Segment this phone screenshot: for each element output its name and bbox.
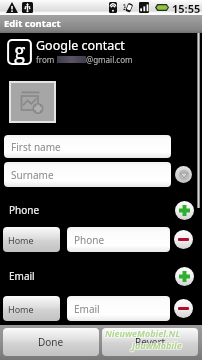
staticText: JouwMobile: [131, 338, 181, 350]
staticText: Email: [74, 302, 100, 316]
button[interactable]: Remove: [174, 299, 193, 318]
button[interactable]: Phone: [67, 227, 170, 252]
staticText: Phone: [9, 203, 40, 217]
staticText: NieuweMobiel.NL: [105, 326, 181, 338]
button[interactable]: Add photo: [11, 83, 54, 121]
staticText: from: [36, 54, 57, 65]
staticText: NieuweMobiel.NL: [104, 326, 180, 338]
button[interactable]: Remove: [174, 230, 193, 249]
staticText: NieuweMobiel.NL: [105, 328, 181, 340]
button[interactable]: Add: [175, 201, 194, 220]
staticText: JouwMobile: [133, 338, 183, 350]
staticText: Home: [8, 303, 34, 315]
staticText: NieuweMobiel.NL: [104, 328, 180, 340]
staticText: Email: [9, 269, 35, 283]
staticText: Google contact: [36, 37, 125, 54]
staticText: NieuweMobiel.NL: [106, 328, 182, 340]
button[interactable]: Home: [3, 296, 60, 321]
button[interactable]: Email: [67, 296, 170, 321]
staticText: NieuweMobiel.NL: [106, 326, 182, 338]
staticText: JouwMobile: [133, 340, 183, 352]
staticText: Surname: [11, 168, 54, 182]
staticText: JouwMobile: [133, 339, 183, 351]
button[interactable]: Revert: [102, 328, 198, 356]
staticText: JouwMobile: [132, 340, 182, 352]
staticText: Phone: [74, 233, 105, 247]
staticText: Edit contact: [4, 17, 61, 30]
staticText: Home: [8, 234, 34, 246]
staticText: JouwMobile: [132, 339, 182, 351]
staticText: Revert: [135, 335, 166, 349]
button[interactable]: Expand: [175, 166, 192, 183]
staticText: NieuweMobiel.NL: [105, 327, 181, 339]
staticText: First name: [11, 140, 61, 154]
staticText: @gmail.com: [86, 54, 133, 65]
button[interactable]: Add: [175, 267, 194, 286]
button[interactable]: Surname: [4, 162, 171, 187]
button[interactable]: Done: [3, 328, 99, 356]
staticText: 15:55: [172, 1, 201, 16]
staticText: g: [14, 37, 26, 63]
staticText: JouwMobile: [132, 338, 182, 350]
staticText: JouwMobile: [131, 340, 181, 352]
staticText: JouwMobile: [131, 339, 181, 351]
staticText: NieuweMobiel.NL: [106, 327, 182, 339]
button[interactable]: Home: [3, 227, 60, 252]
staticText: NieuweMobiel.NL: [104, 327, 180, 339]
staticText: Done: [38, 335, 64, 349]
button[interactable]: First name: [4, 135, 171, 158]
